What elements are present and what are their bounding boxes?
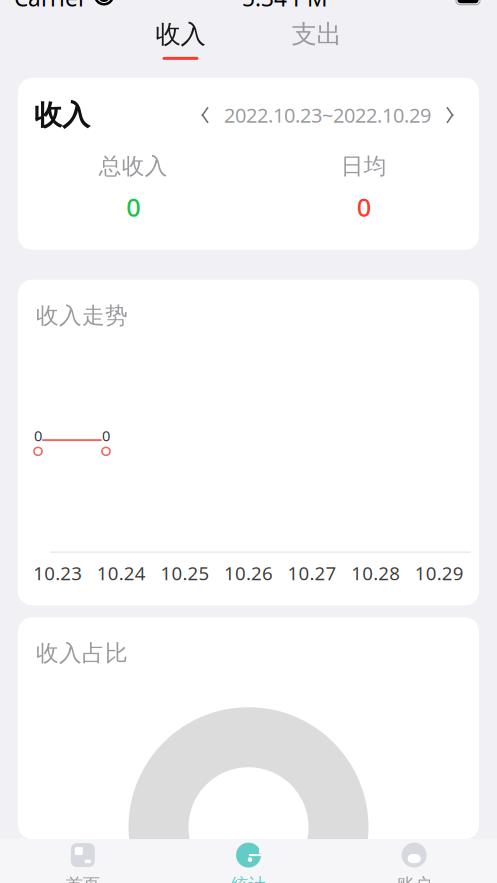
staticText: Carrier <box>14 0 87 13</box>
staticText: 收入 <box>34 98 90 132</box>
staticText: 10.27 <box>288 561 337 585</box>
staticText: 0 <box>102 426 110 445</box>
staticText: 0 <box>126 190 140 224</box>
staticText: 收入占比 <box>36 639 128 667</box>
staticText: 收入走势 <box>36 302 128 330</box>
staticText: 10.25 <box>160 561 209 585</box>
button[interactable]: 首页 <box>0 836 166 883</box>
staticText: 10.26 <box>224 561 273 585</box>
staticText: 收入 <box>155 19 205 50</box>
staticText: 首页 <box>66 874 100 883</box>
staticText: 统计 <box>231 874 265 883</box>
staticText: 0 <box>357 190 371 224</box>
button[interactable]: 统计 <box>166 836 331 883</box>
staticText: 账户 <box>397 874 431 883</box>
staticText: 总收入 <box>99 152 168 180</box>
staticText: 日均 <box>341 152 387 180</box>
staticText: 10.29 <box>415 561 464 585</box>
staticText: 10.28 <box>351 561 400 585</box>
staticText: 5:34 PM <box>242 0 328 13</box>
button[interactable]: Previous week <box>192 100 218 130</box>
staticText: 10.23 <box>33 561 82 585</box>
staticText: 10.24 <box>97 561 146 585</box>
button[interactable]: 账户 <box>331 836 497 883</box>
staticText: 支出 <box>291 19 341 50</box>
button[interactable]: 支出 <box>279 19 353 60</box>
staticText: 0 <box>34 426 42 445</box>
staticText: 2022.10.23~2022.10.29 <box>224 102 431 128</box>
button[interactable]: 收入 <box>143 19 217 60</box>
button[interactable]: Next week <box>437 100 463 130</box>
